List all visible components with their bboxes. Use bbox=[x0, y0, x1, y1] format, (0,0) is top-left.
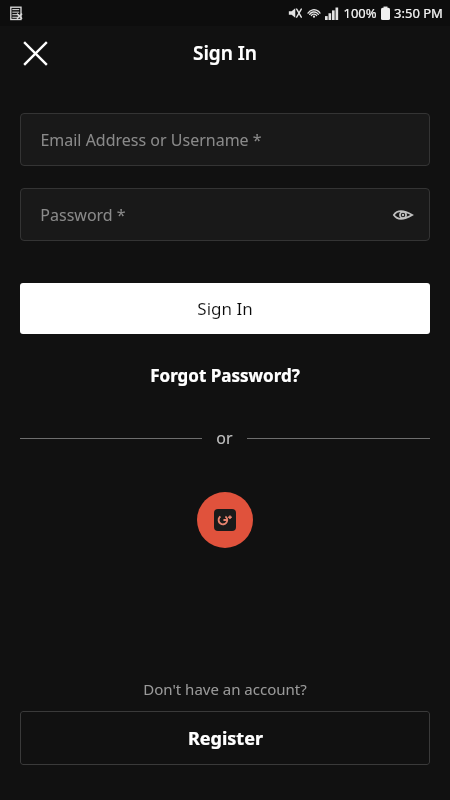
button[interactable]: Email Address or Username * bbox=[20, 113, 430, 166]
button[interactable]: Show password bbox=[384, 196, 422, 234]
staticText: Email Address or Username * bbox=[40, 129, 262, 151]
button[interactable]: Sign in with Google Plus bbox=[197, 492, 253, 548]
staticText: Password * bbox=[40, 204, 126, 226]
staticText: Sign In bbox=[193, 40, 257, 66]
button[interactable]: Sign In bbox=[20, 283, 430, 334]
staticText: 100% bbox=[343, 4, 377, 22]
button[interactable]: Password * bbox=[20, 188, 430, 241]
staticText: Sign In bbox=[197, 297, 253, 320]
staticText: 3:50 PM bbox=[394, 4, 443, 22]
button[interactable]: Close bbox=[14, 32, 56, 74]
staticText: Forgot Password? bbox=[150, 364, 300, 387]
staticText: Don't have an account? bbox=[143, 679, 307, 699]
staticText: or bbox=[216, 427, 233, 449]
button[interactable]: Register bbox=[20, 711, 430, 765]
button[interactable]: Forgot Password? bbox=[140, 358, 310, 393]
staticText: Register bbox=[188, 726, 263, 751]
